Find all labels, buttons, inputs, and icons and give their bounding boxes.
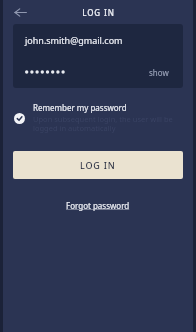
staticText: Upon subsequent login, the user will be … [33,114,173,134]
button[interactable]: john.smith@gmail.com [13,24,183,56]
button[interactable]: Forgot password [60,197,136,214]
staticText: LOG IN [82,7,115,18]
staticText: LOG IN [80,159,116,171]
staticText: Remember my password [33,102,127,113]
staticText: john.smith@gmail.com [25,34,123,46]
button[interactable]: show [13,56,183,88]
staticText: Forgot password [66,200,130,211]
button[interactable]: LOG IN [13,151,183,179]
button[interactable]: Remember my password [3,98,193,138]
button[interactable]: Back [9,1,31,23]
staticText: show [149,67,169,78]
button[interactable]: show [147,64,171,81]
